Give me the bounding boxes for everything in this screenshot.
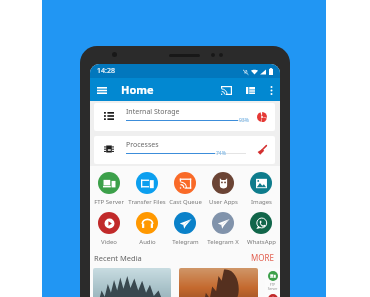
staticText: Transfer Files [128, 198, 166, 206]
button[interactable]: More options [264, 83, 278, 97]
button[interactable]: Change view [242, 82, 258, 98]
button[interactable]: Telegram X [204, 212, 242, 246]
staticText: User Apps [209, 198, 238, 206]
staticText: 74% [216, 150, 226, 157]
staticText: Processes [126, 140, 159, 150]
staticText: Cast Queue [169, 198, 202, 206]
button[interactable]: Menu [94, 82, 110, 98]
button[interactable] [93, 268, 171, 297]
button[interactable]: Cast [218, 82, 234, 98]
button[interactable]: Telegram [166, 212, 204, 246]
staticText: Home [121, 82, 154, 97]
button[interactable]: Video [268, 294, 278, 297]
button[interactable]: Cast Queue [166, 172, 204, 206]
staticText: 93% [239, 117, 249, 124]
button[interactable]: Images [242, 172, 280, 206]
button[interactable]: FTP Server [90, 172, 128, 206]
staticText: FTP Server [265, 283, 280, 291]
staticText: WhatsApp [247, 238, 276, 246]
button[interactable]: FTP Server [268, 271, 278, 281]
staticText: 14:28 [97, 66, 115, 76]
button[interactable]: WhatsApp [242, 212, 280, 246]
button[interactable]: MORE [251, 252, 274, 263]
button[interactable]: Internal Storage [94, 103, 275, 131]
staticText: Telegram X [207, 238, 239, 246]
button[interactable]: Processes [94, 136, 275, 164]
staticText: Telegram [172, 238, 199, 246]
staticText: Internal Storage [126, 107, 180, 117]
button[interactable] [179, 268, 258, 297]
staticText: Images [251, 198, 272, 206]
button[interactable]: Video [90, 212, 128, 246]
button[interactable]: Audio [128, 212, 166, 246]
staticText: Recent Media [94, 253, 142, 263]
staticText: Audio [139, 238, 156, 246]
staticText: Video [101, 238, 117, 246]
staticText: FTP Server [94, 198, 124, 206]
button[interactable]: Transfer Files [128, 172, 166, 206]
button[interactable]: User Apps [204, 172, 242, 206]
